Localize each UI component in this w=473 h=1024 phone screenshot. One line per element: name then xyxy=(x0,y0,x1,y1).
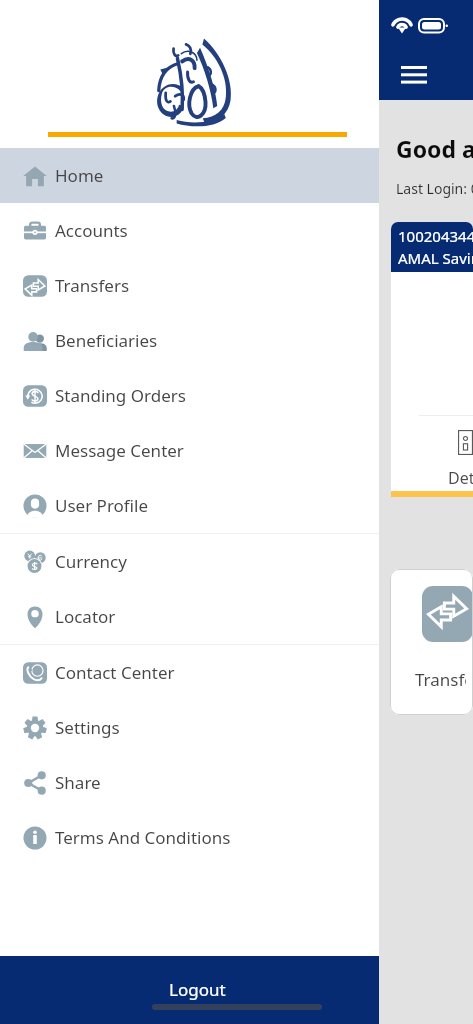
staticText: Last Login: 05/04/2023 xyxy=(396,179,473,198)
staticText: Details xyxy=(448,467,473,489)
staticText: User Profile xyxy=(55,494,149,517)
button[interactable]: Currency xyxy=(0,534,379,589)
button[interactable]: Home xyxy=(0,148,379,203)
staticText: 1002043447 xyxy=(398,226,473,246)
button[interactable]: Logout xyxy=(0,956,379,1024)
button[interactable]: Locator xyxy=(0,589,379,644)
button[interactable]: Contact Center xyxy=(0,645,379,700)
button[interactable]: User Profile xyxy=(0,478,379,533)
button[interactable]: Open navigation menu xyxy=(393,58,435,92)
button[interactable]: Terms And Conditions xyxy=(0,810,379,865)
staticText: Contact Center xyxy=(55,661,175,684)
staticText: Settings xyxy=(55,716,120,739)
button[interactable]: Beneficiaries xyxy=(0,313,379,368)
staticText: Home xyxy=(55,164,104,187)
staticText: Terms And Conditions xyxy=(55,826,231,849)
staticText: Logout xyxy=(169,978,226,1001)
staticText: Message Center xyxy=(55,439,184,462)
staticText: Share xyxy=(55,771,101,794)
button[interactable]: Settings xyxy=(0,700,379,755)
staticText: Good afternoon xyxy=(396,133,473,164)
button[interactable]: Transfers xyxy=(0,258,379,313)
staticText: Accounts xyxy=(55,219,128,242)
button[interactable]: Standing Orders xyxy=(0,368,379,423)
button[interactable]: Message Center xyxy=(0,423,379,478)
staticText: Transfers xyxy=(55,274,130,297)
staticText: Currency xyxy=(55,550,127,573)
staticText: Locator xyxy=(55,605,116,628)
staticText: Beneficiaries xyxy=(55,329,158,352)
button[interactable]: Accounts xyxy=(0,203,379,258)
button[interactable]: Share xyxy=(0,755,379,810)
staticText: Transfer xyxy=(415,668,466,691)
staticText: AMAL Saving xyxy=(398,248,473,268)
button[interactable]: Transfer xyxy=(390,569,473,715)
staticText: Standing Orders xyxy=(55,384,186,407)
